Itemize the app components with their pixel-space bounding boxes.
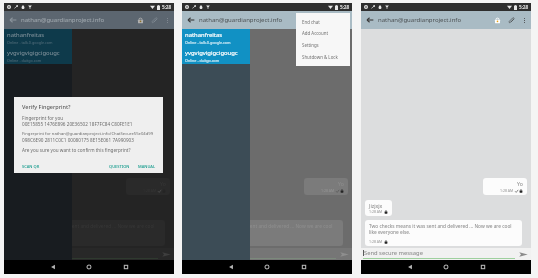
button[interactable]: End chat [296,16,350,27]
button[interactable]: Back [221,260,241,274]
button[interactable]: Back [43,260,63,274]
staticText: yvgvigvigigcigougc [7,49,60,57]
staticText: Jizjxjx [369,202,383,209]
button[interactable]: SCAN QR [22,164,40,169]
button[interactable]: More options [518,11,531,29]
button[interactable]: Settings [296,39,350,51]
button[interactable]: Yo [304,178,348,195]
button[interactable]: Recent apps [294,260,314,274]
staticText: 1:28 AM [369,209,383,214]
staticText: Send secure message [364,249,423,257]
button[interactable]: Attach [504,11,518,29]
button[interactable]: Home [436,260,456,274]
staticText: Are you sure you want to confirm this fi… [22,147,131,153]
staticText: End chat [302,19,320,25]
button[interactable]: Add Account [296,27,350,39]
staticText: 1:28 AM [321,188,335,193]
staticText: Fingerprint for you [22,115,64,121]
button[interactable]: QUESTION [109,164,130,169]
button[interactable]: MANUAL [138,164,156,169]
button[interactable]: Attach [147,11,161,29]
button[interactable]: Recent apps [116,260,136,274]
staticText: nathan@guardianproject.info [199,16,283,24]
staticText: Online - talk.0.google.com [185,40,231,45]
staticText: SCAN QR [22,164,40,169]
staticText: nathan@guardianproject.info [21,16,105,24]
staticText: Online - duitgo.com [7,58,42,63]
staticText: Two checks means it was sent and deliver… [12,223,162,235]
button[interactable]: Home [79,260,99,274]
staticText: Settings [302,42,319,48]
staticText: Two checks means it was sent and deliver… [190,223,340,235]
staticText: nathan@guardianproject.info [378,16,462,24]
button[interactable]: yvgvigvigigcigougc [182,47,250,64]
button[interactable]: Home [257,260,277,274]
button[interactable]: Attach [325,11,339,29]
staticText: Shutdown & Lock [302,54,338,60]
staticText: 5:28 [519,4,529,10]
button[interactable]: Encryption lock [133,11,147,29]
staticText: Fingerprint for nathan@guardianproject.i… [22,131,154,137]
staticText: Add Account [302,30,329,36]
button[interactable]: Yo [483,178,527,195]
button[interactable]: Send [161,249,172,260]
staticText: MANUAL [138,164,156,169]
staticText: 5:28 [340,4,350,10]
staticText: nathanfreitas [185,31,223,39]
button[interactable]: More options [161,11,174,29]
button[interactable]: Two checks means it was sent and deliver… [8,220,165,246]
staticText: Verify Fingerprint? [22,103,71,110]
staticText: 1:28 AM [369,239,383,244]
button[interactable]: Back [4,11,21,29]
staticText: nathanfreitas [7,31,45,39]
staticText: 098C6E90 2811C0C1 00080175 8E15E061 7A99… [22,137,134,143]
button[interactable]: Back [182,11,199,29]
staticText: Two checks means it was sent and deliver… [369,223,519,235]
button[interactable]: Shutdown & Lock [296,51,350,63]
button[interactable]: Encryption lock [311,11,325,29]
button[interactable]: Back [361,11,378,29]
button[interactable]: Recent apps [473,260,493,274]
button[interactable]: Send [339,249,350,260]
staticText: Yo [517,180,523,187]
staticText: 00E15855 1476E896 20E36502 18F7FC84 C80F… [22,121,133,127]
button[interactable]: Two checks means it was sent and deliver… [186,220,343,246]
staticText: yvgvigvigigcigougc [185,49,238,57]
staticText: Online - duitgo.com [185,58,220,63]
button[interactable]: Two checks means it was sent and deliver… [365,220,522,246]
button[interactable]: nathanfreitas [4,29,72,47]
button[interactable]: Jizjxjx [365,200,392,216]
button[interactable]: Encryption lock [490,11,504,29]
button[interactable]: nathanfreitas [182,29,250,47]
staticText: Online - talk.0.google.com [7,40,53,45]
staticText: QUESTION [109,164,130,169]
staticText: 1:28 AM [500,188,514,193]
staticText: 5:28 [162,4,172,10]
button[interactable]: yvgvigvigigcigougc [4,47,72,64]
staticText: Yo [338,180,344,187]
button[interactable]: More options [339,11,352,29]
button[interactable]: Back [400,260,420,274]
button[interactable]: Send [518,249,529,260]
